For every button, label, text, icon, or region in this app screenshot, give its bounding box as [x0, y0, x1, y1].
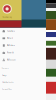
staticText: Terms of Use — [2, 89, 12, 90]
button[interactable]: Settings — [0, 72, 46, 79]
button[interactable]: My Account — [0, 56, 46, 63]
staticText: Settings — [2, 75, 7, 76]
staticText: Talk to Starbucks — [2, 82, 14, 83]
button[interactable]: Rewards — [0, 49, 46, 56]
staticText: My Orders — [7, 45, 15, 46]
button[interactable]: Terms of Use — [0, 86, 46, 93]
staticText: My Account — [7, 59, 16, 61]
staticText: My Card — [7, 37, 13, 39]
button[interactable]: Careers — [0, 65, 46, 72]
staticText: Good morning — [2, 16, 12, 18]
staticText: Careers — [2, 68, 9, 69]
button[interactable]: My Card — [0, 35, 46, 42]
staticText: Rewards — [7, 52, 14, 54]
button[interactable]: Talk to Starbucks — [0, 79, 46, 86]
button[interactable]: Find a Store — [0, 27, 46, 35]
staticText: Find a Store — [7, 30, 15, 32]
button[interactable]: My Orders — [0, 42, 46, 49]
